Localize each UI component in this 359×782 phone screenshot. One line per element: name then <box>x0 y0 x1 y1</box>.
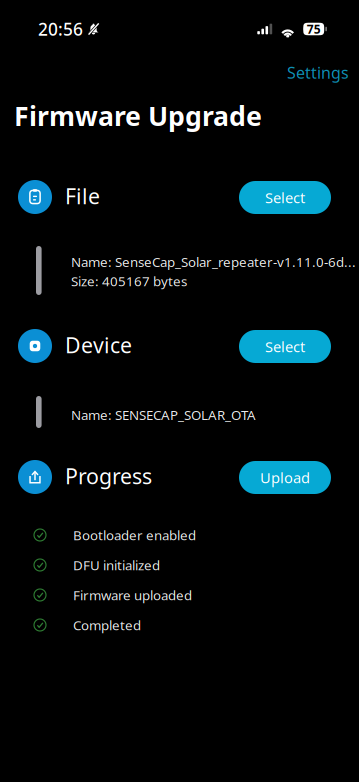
staticText: Size: 405167 bytes <box>71 272 187 290</box>
button[interactable]: Select device <box>239 330 331 363</box>
staticText: File <box>65 182 100 210</box>
staticText: Firmware Upgrade <box>14 98 262 133</box>
button[interactable]: Settings <box>278 56 358 89</box>
staticText: Settings <box>287 62 349 83</box>
staticText: Firmware uploaded <box>73 586 192 604</box>
staticText: Select <box>265 337 305 356</box>
staticText: 20:56 <box>38 17 83 40</box>
staticText: Progress <box>65 462 152 490</box>
staticText: 75 <box>307 21 321 37</box>
staticText: Completed <box>73 616 141 634</box>
staticText: Name: SenseCap_Solar_repeater-v1.11.0-6d… <box>71 253 356 271</box>
staticText: Name: SENSECAP_SOLAR_OTA <box>71 406 256 424</box>
staticText: DFU initialized <box>73 556 160 574</box>
staticText: Upload <box>260 468 310 487</box>
staticText: Select <box>265 188 305 207</box>
button[interactable]: Upload firmware <box>239 461 331 494</box>
staticText: Device <box>65 331 132 359</box>
button[interactable]: Select file <box>239 181 331 214</box>
staticText: Bootloader enabled <box>73 526 196 544</box>
